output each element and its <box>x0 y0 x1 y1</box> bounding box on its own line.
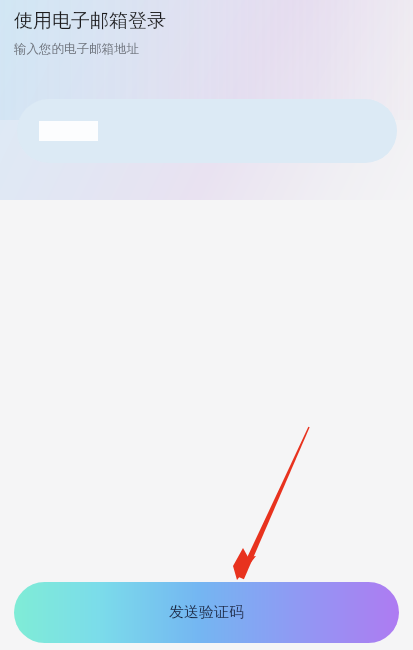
button[interactable] <box>17 99 397 163</box>
button[interactable]: 发送验证码 <box>14 582 399 643</box>
staticText: 使用电子邮箱登录 <box>14 9 166 33</box>
staticText: 输入您的电子邮箱地址 <box>14 41 139 57</box>
staticText: 发送验证码 <box>169 603 244 622</box>
